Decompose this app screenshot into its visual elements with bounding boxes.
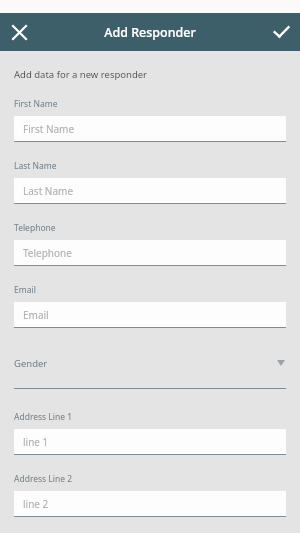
staticText: Add data for a new responder xyxy=(14,68,148,81)
button[interactable]: Gender xyxy=(14,350,286,389)
staticText: First Name xyxy=(23,122,75,136)
staticText: Last Name xyxy=(14,160,57,172)
staticText: Email xyxy=(23,308,49,322)
staticText: Address Line 1 xyxy=(14,411,73,423)
button[interactable]: line 2 xyxy=(14,491,286,517)
staticText: Telephone xyxy=(23,246,72,260)
other: Open gender dropdown xyxy=(277,360,285,366)
button[interactable]: line 1 xyxy=(14,429,286,455)
button[interactable]: Last Name xyxy=(14,178,286,204)
staticText: Add Responder xyxy=(104,24,196,41)
staticText: Telephone xyxy=(14,222,56,234)
staticText: line 2 xyxy=(23,497,49,511)
staticText: line 1 xyxy=(23,435,49,449)
staticText: Email xyxy=(14,284,36,296)
staticText: Address Line 2 xyxy=(14,473,73,485)
button[interactable]: Telephone xyxy=(14,240,286,266)
staticText: Last Name xyxy=(23,184,74,198)
button[interactable]: First Name xyxy=(14,116,286,142)
button[interactable]: Close xyxy=(0,13,38,51)
staticText: Gender xyxy=(14,357,277,370)
staticText: First Name xyxy=(14,98,58,110)
button[interactable]: Save xyxy=(262,13,300,51)
button[interactable]: Email xyxy=(14,302,286,328)
